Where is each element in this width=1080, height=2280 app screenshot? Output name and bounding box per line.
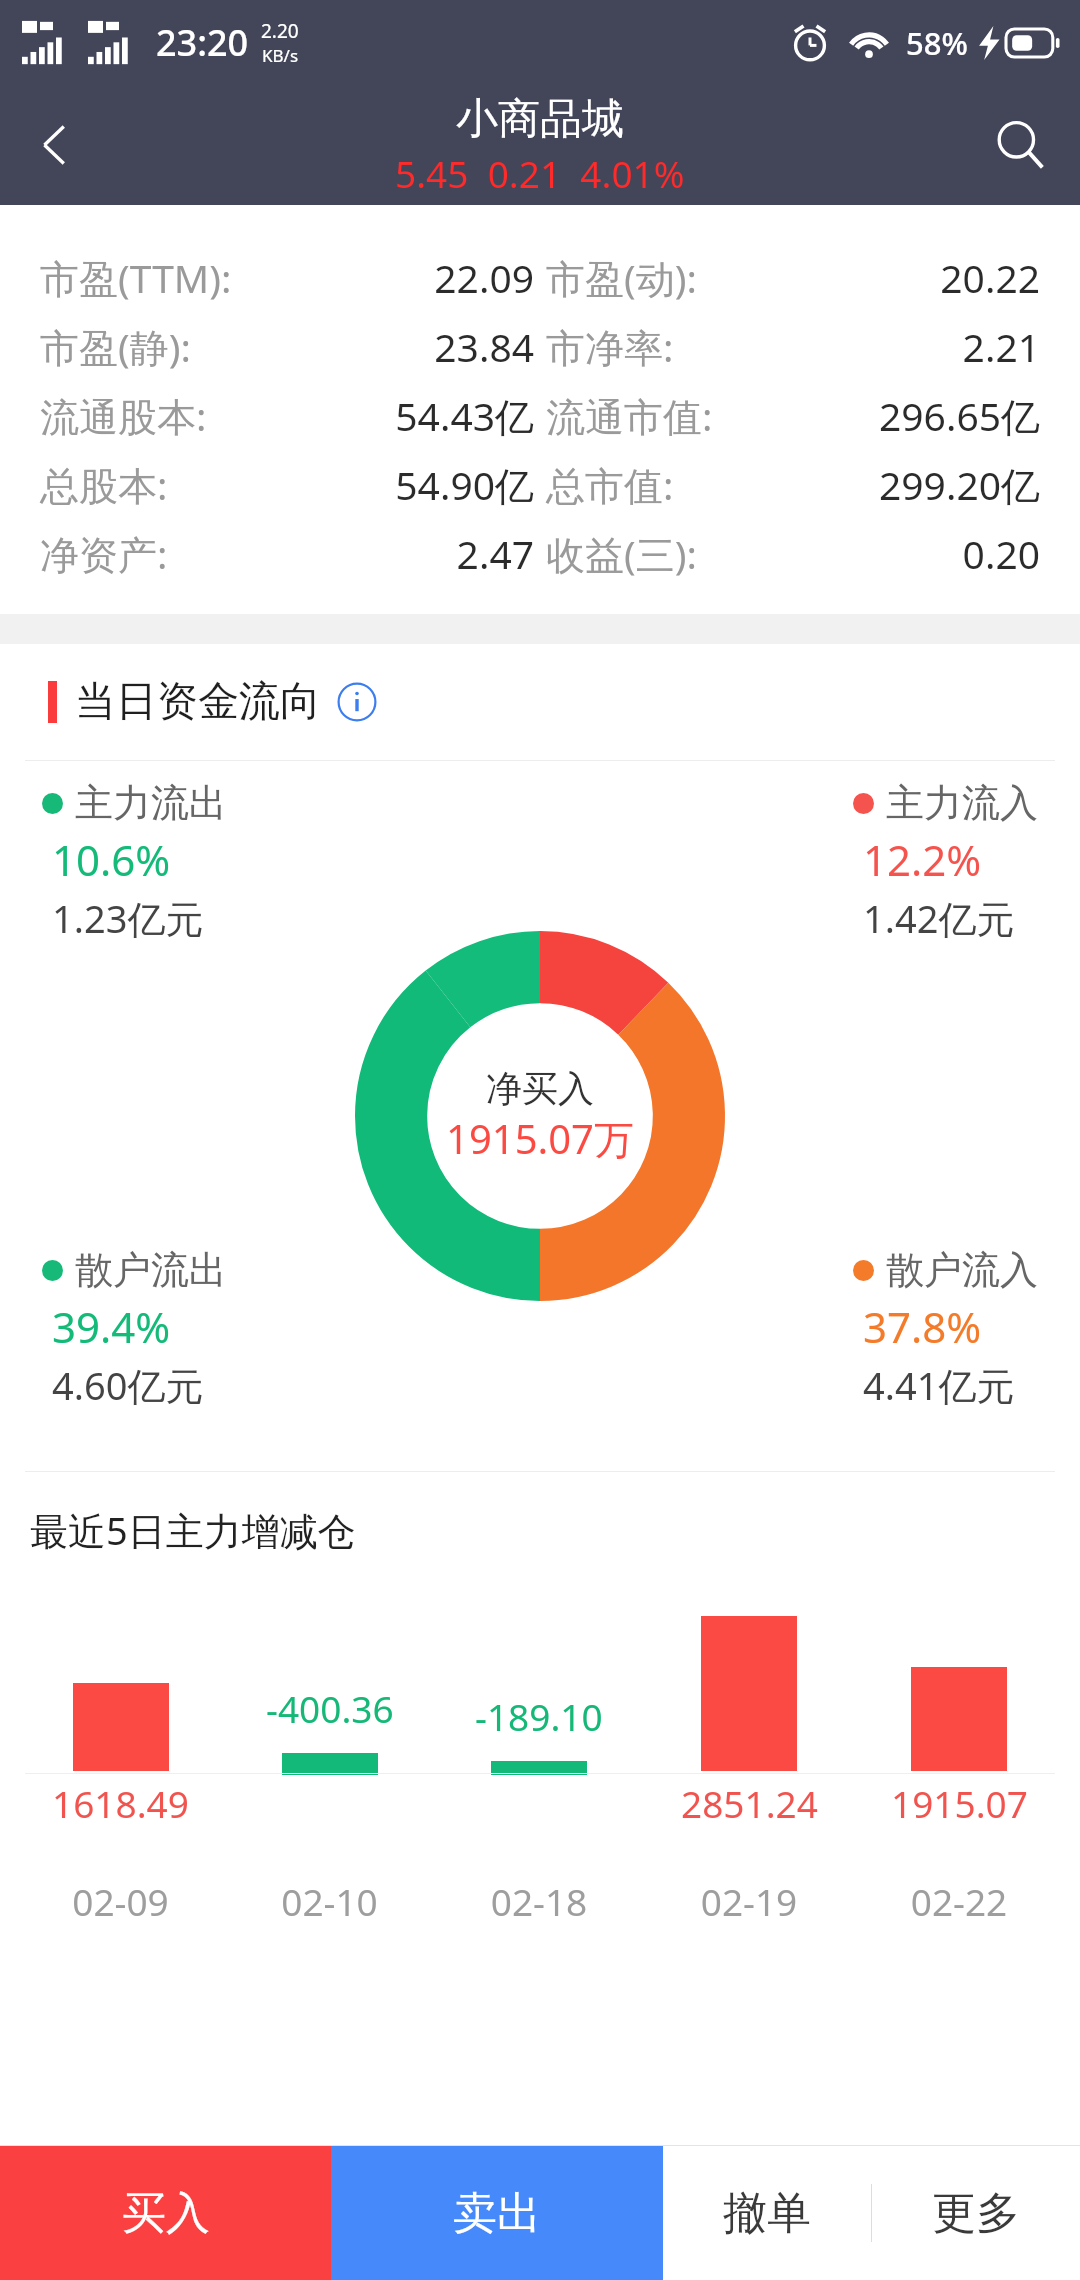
staticText: 02-22 [854,1876,1064,1926]
staticText: 散户流入 [886,1246,1038,1294]
staticText: 撤单 [723,2186,811,2241]
staticText: 37.8% [863,1298,982,1355]
staticText: 02-09 [16,1876,225,1926]
staticText: 12.2% [863,831,982,888]
staticText: 10.6% [52,831,171,888]
staticText: 4.60亿元 [52,1359,204,1411]
staticText: 1915.07万 [446,1111,634,1166]
staticText: 1.23亿元 [52,892,204,944]
staticText: 主力流入 [886,779,1038,827]
staticText: 22.09 [232,251,534,304]
staticText: 299.20亿 [674,458,1040,511]
staticText: 4.41亿元 [863,1359,1015,1411]
staticText: 5.45 0.21 4.01% [395,148,685,198]
staticText: 02-18 [434,1876,644,1926]
staticText: 39.4% [52,1298,171,1355]
staticText: 1.42亿元 [863,892,1015,944]
staticText: 0.20 [697,527,1040,580]
staticText: 流通股本: [40,389,207,442]
staticText: 当日资金流向 [75,676,321,728]
staticText: 总股本: [40,458,168,511]
button[interactable]: 当日资金流向 [0,644,1080,760]
staticText: 54.90亿 [168,458,534,511]
staticText: 收益(三): [546,527,697,580]
staticText: 散户流出 [75,1246,227,1294]
staticText: 流通市值: [546,389,713,442]
staticText: 23.84 [191,320,534,373]
staticText: 02-10 [225,1876,434,1926]
staticText: 净买入 [486,1066,594,1111]
staticText: 市盈(动): [546,251,697,304]
staticText: 1915.07 [891,1778,1028,1828]
staticText: 2.20 [261,18,299,44]
staticText: 1618.49 [52,1778,189,1828]
staticText: KB/s [262,44,299,67]
staticText: 02-19 [644,1876,854,1926]
staticText: 296.65亿 [713,389,1040,442]
staticText: 小商品城 [456,93,624,146]
staticText: 更多 [932,2186,1020,2241]
staticText: 2.47 [168,527,534,580]
staticText: 净资产: [40,527,168,580]
staticText: 总市值: [546,458,674,511]
button[interactable]: 撤单 [663,2146,871,2280]
staticText: 市盈(静): [40,320,191,373]
staticText: -400.36 [266,1683,394,1733]
staticText: 最近5日主力增减仓 [30,1504,356,1556]
staticText: 卖出 [453,2186,541,2241]
button[interactable]: Back [0,85,110,205]
staticText: 市盈(TTM): [40,251,232,304]
staticText: 20.22 [697,251,1040,304]
button[interactable]: 更多 [872,2146,1080,2280]
staticText: 市净率: [546,320,674,373]
staticText: 54.43亿 [207,389,534,442]
staticText: 23:20 [156,18,249,67]
staticText: 2.21 [674,320,1040,373]
button[interactable]: 买入 [0,2146,331,2280]
button[interactable]: Search [960,85,1080,205]
button[interactable]: 卖出 [331,2146,663,2280]
staticText: 买入 [122,2186,210,2241]
staticText: 主力流出 [75,779,227,827]
staticText: 58% [906,22,968,64]
staticText: 2851.24 [681,1778,818,1828]
staticText: -189.10 [475,1691,603,1741]
